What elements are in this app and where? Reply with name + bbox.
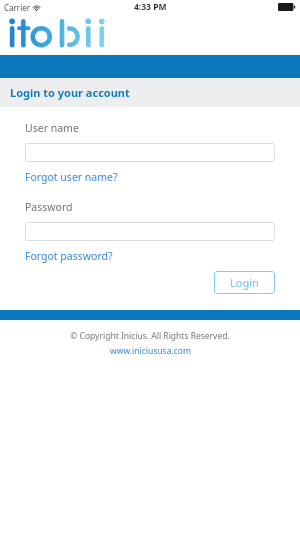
staticText: Password: [25, 200, 73, 214]
staticText: © Copyright Inicius. All Rights Reserved…: [70, 330, 230, 342]
button[interactable]: Forgot password?: [25, 249, 113, 263]
button[interactable]: Login to your account: [0, 78, 300, 107]
staticText: Carrier: [4, 2, 31, 13]
button[interactable]: Password input: [25, 222, 275, 241]
button[interactable]: Forgot user name?: [25, 170, 118, 184]
staticText: 4:33 PM: [134, 1, 167, 13]
other: itokii logo: [6, 18, 118, 52]
staticText: Forgot user name?: [25, 170, 118, 184]
button[interactable]: Login: [214, 271, 275, 294]
staticText: User name: [25, 121, 79, 135]
staticText: Forgot password?: [25, 249, 113, 263]
staticText: Login to your account: [10, 85, 130, 100]
staticText: Login: [230, 275, 259, 290]
staticText: www.iniciususa.com: [110, 345, 191, 357]
button[interactable]: www.iniciususa.com: [110, 345, 191, 357]
button[interactable]: User name input: [25, 143, 275, 162]
